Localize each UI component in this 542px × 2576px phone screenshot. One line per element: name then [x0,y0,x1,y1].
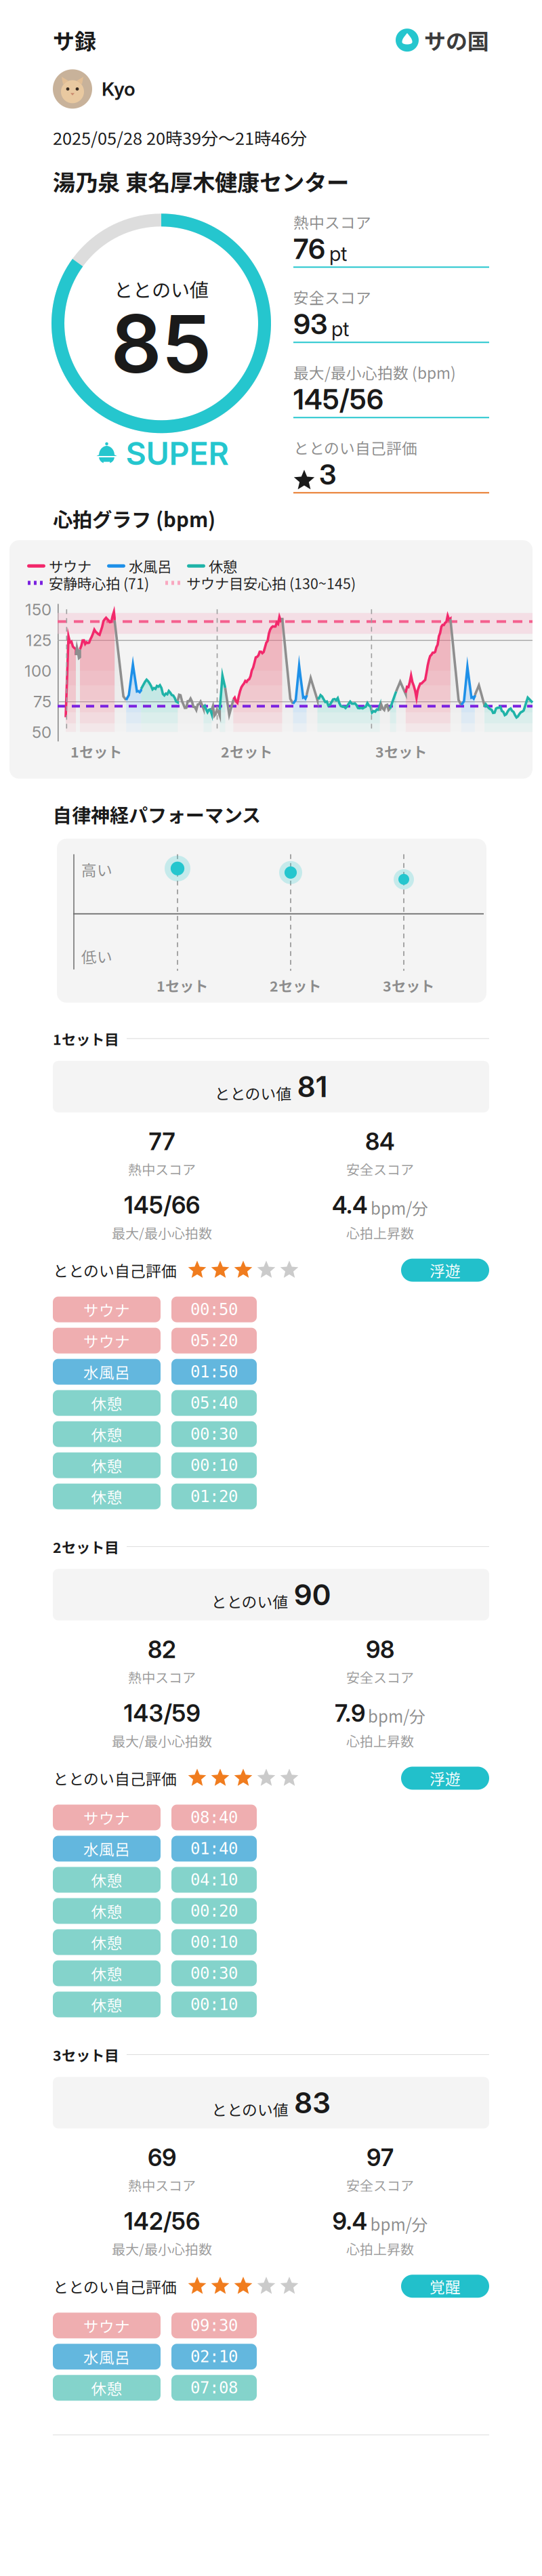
button[interactable]: 00:20 [171,1898,257,1924]
staticText: 休憩 [91,1962,122,1984]
staticText: 最大/最小心拍数 [112,1223,212,1242]
staticText: 熱中スコア [128,1667,196,1687]
staticText: 125 [26,630,51,650]
staticText: 休憩 [91,1423,122,1445]
button[interactable]: 休憩 [53,2375,161,2401]
button[interactable]: 00:30 [171,1960,257,1986]
staticText: 145/66 [124,1191,200,1219]
button[interactable]: 覚醒 [401,2275,489,2298]
button[interactable]: 01:50 [171,1359,257,1385]
button[interactable]: 浮遊 [401,1767,489,1790]
button[interactable]: 休憩 [53,1992,161,2017]
staticText: 熱中スコア [128,2175,196,2195]
staticText: 休憩 [91,1931,122,1953]
staticText: サウナ [83,2314,130,2337]
staticText: SUPER [126,434,229,473]
button[interactable]: サの国 [396,24,489,56]
staticText: 83 [294,2085,331,2120]
button[interactable]: 休憩 [53,1452,161,1478]
staticText: ととのい値 [214,1082,292,1104]
button[interactable]: 00:10 [171,1452,257,1478]
button[interactable]: 01:40 [171,1836,257,1862]
staticText: 00:10 [190,1995,238,2014]
button[interactable]: サウナ [53,1328,161,1353]
button[interactable]: 05:40 [171,1390,257,1416]
staticText: サ録 [53,24,96,56]
staticText: サウナ目安心拍 (130~145) [186,572,356,593]
staticText: 143/59 [124,1699,200,1727]
staticText: 150 [25,600,51,619]
staticText: 2セット目 [53,1536,119,1557]
button[interactable]: 05:20 [171,1328,257,1353]
staticText: 07:08 [190,2378,238,2397]
staticText: 00:20 [190,1902,238,1920]
staticText: 安全スコア [346,1159,414,1179]
staticText: 75 [33,691,51,711]
button[interactable]: 01:20 [171,1484,257,1509]
staticText: 01:20 [190,1487,238,1506]
button[interactable]: 00:50 [171,1297,257,1322]
button[interactable]: サウナ [53,2313,161,2338]
staticText: 心拍上昇数 [346,2239,414,2258]
button[interactable]: 水風呂 [53,2344,161,2370]
staticText: 3セット目 [53,2044,119,2065]
button[interactable]: 09:30 [171,2313,257,2338]
button[interactable]: サウナ [53,1297,161,1322]
button[interactable]: 08:40 [171,1805,257,1830]
button[interactable]: Kyo [53,69,489,109]
staticText: 覚醒 [430,2275,461,2297]
staticText: 81 [297,1069,328,1104]
staticText: 98 [366,1635,394,1664]
staticText: 休憩 [91,1485,122,1508]
staticText: 安静時心拍 (71) [49,572,149,593]
staticText: 浮遊 [430,1259,461,1281]
staticText: サの国 [424,24,489,56]
button[interactable]: 休憩 [53,1867,161,1893]
button[interactable]: 水風呂 [53,1359,161,1385]
button[interactable]: 02:10 [171,2344,257,2370]
button[interactable]: 00:30 [171,1421,257,1447]
button[interactable]: サウナ [53,1805,161,1830]
staticText: 85 [111,296,212,392]
button[interactable]: 04:10 [171,1867,257,1893]
staticText: 76 [293,232,325,266]
staticText: 00:10 [190,1933,238,1952]
staticText: 低い [81,945,112,967]
staticText: 3セット [375,741,427,762]
staticText: サウナ [49,555,91,576]
staticText: 自律神経パフォーマンス [53,800,261,828]
button[interactable]: 07:08 [171,2375,257,2401]
staticText: 04:10 [190,1870,238,1889]
staticText: pt [331,317,349,341]
button[interactable]: 00:10 [171,1992,257,2017]
button[interactable]: 休憩 [53,1898,161,1924]
button[interactable]: 休憩 [53,1960,161,1986]
staticText: 湯乃泉 東名厚木健康センター [53,165,349,197]
staticText: 97 [367,2143,394,2172]
button[interactable]: 休憩 [53,1929,161,1955]
staticText: 50 [32,722,51,742]
staticText: 安全スコア [346,1667,414,1687]
staticText: 00:30 [190,1425,238,1444]
button[interactable]: 水風呂 [53,1836,161,1862]
button[interactable]: 休憩 [53,1421,161,1447]
button[interactable]: 浮遊 [401,1259,489,1282]
staticText: 3セット [383,975,434,996]
staticText: 1セット [70,741,122,762]
button[interactable]: 休憩 [53,1390,161,1416]
staticText: 08:40 [190,1808,238,1827]
staticText: 高い [81,858,112,881]
staticText: サウナ [83,1298,130,1321]
staticText: 安全スコア [346,2175,414,2195]
staticText: 01:40 [190,1839,238,1858]
staticText: 09:30 [190,2316,238,2335]
button[interactable]: 休憩 [53,1484,161,1509]
staticText: 心拍上昇数 [346,1731,414,1750]
staticText: サウナ [83,1329,130,1352]
staticText: 2025/05/28 20時39分〜21時46分 [53,125,307,150]
staticText: ととのい自己評価 [53,2275,177,2297]
staticText: 84 [365,1127,395,1156]
staticText: 最大/最小心拍数 [112,1731,212,1750]
staticText: 82 [148,1635,176,1664]
button[interactable]: 00:10 [171,1929,257,1955]
